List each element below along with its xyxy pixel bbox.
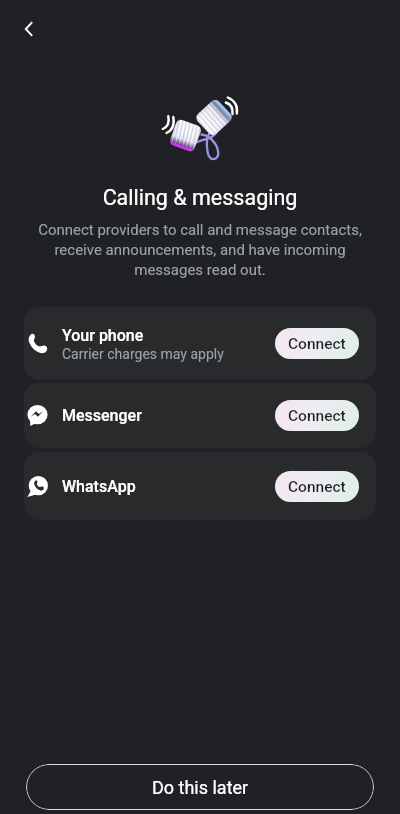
staticText: Messenger [62, 406, 142, 425]
button[interactable]: Messenger [24, 383, 376, 448]
button[interactable]: Connect [275, 328, 359, 359]
button[interactable]: Back [11, 11, 47, 47]
staticText: WhatsApp [62, 477, 136, 496]
button[interactable]: Do this later [26, 764, 374, 810]
staticText: Connect [288, 335, 346, 353]
staticText: Connect [288, 407, 346, 425]
button[interactable]: Connect [275, 400, 359, 431]
staticText: Connect [288, 478, 346, 496]
staticText: Connect providers to call and message co… [20, 221, 380, 278]
staticText: Carrier charges may apply [62, 346, 224, 362]
button[interactable]: Connect [275, 471, 359, 502]
staticText: Calling & messaging [0, 185, 400, 210]
staticText: Do this later [152, 777, 249, 798]
button[interactable]: WhatsApp [24, 452, 376, 520]
staticText: Your phone [62, 326, 144, 345]
button[interactable]: Your phone [24, 307, 376, 380]
